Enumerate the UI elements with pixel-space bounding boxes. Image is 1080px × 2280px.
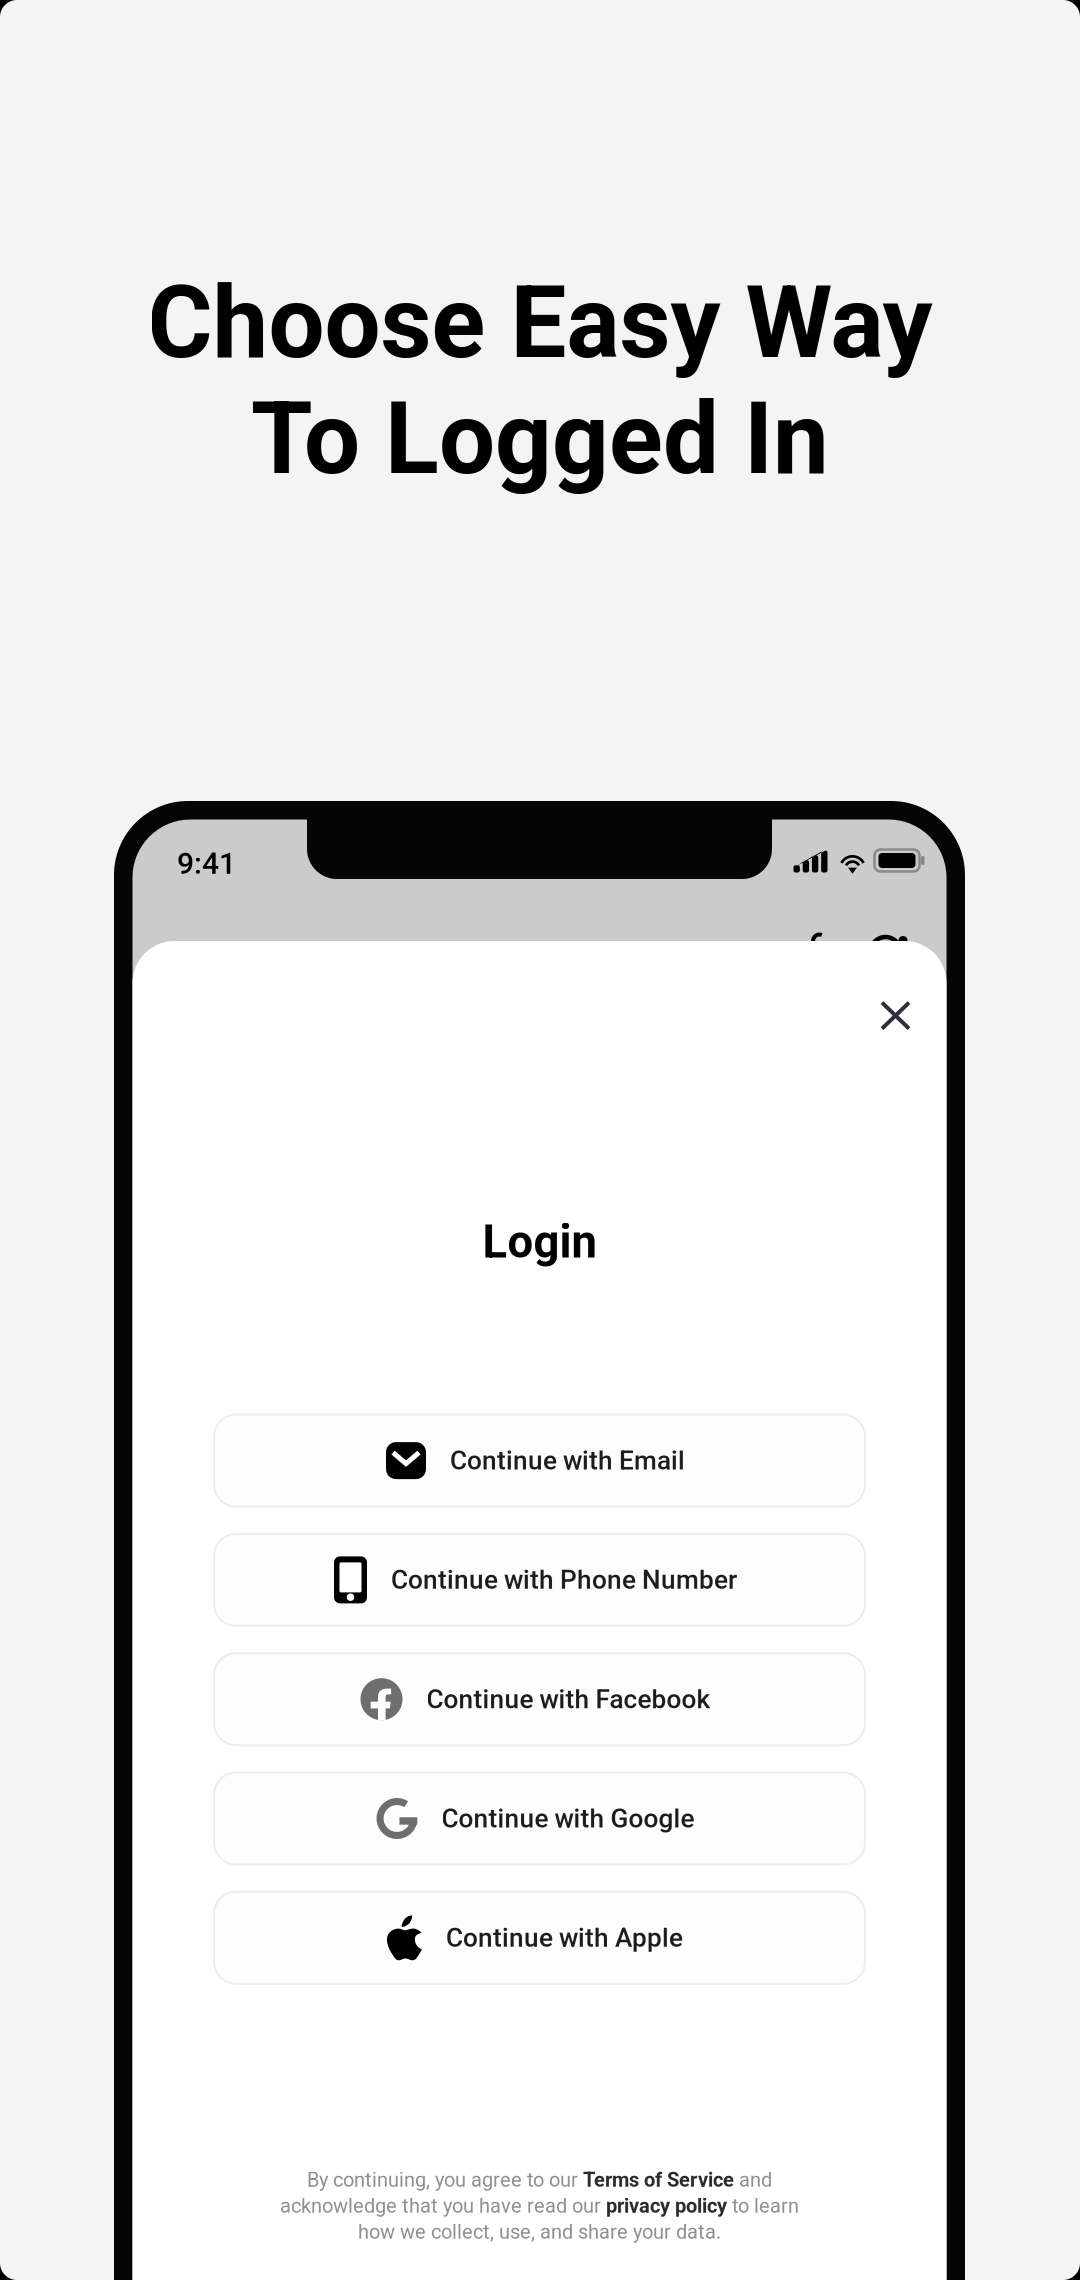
button[interactable]: Continue with Phone Number [214, 1534, 865, 1626]
staticText: to learn [727, 2194, 799, 2218]
staticText: acknowledge that you have read our [280, 2194, 606, 2218]
button[interactable]: Continue with Facebook [214, 1653, 865, 1745]
button[interactable]: Continue with Apple [214, 1892, 865, 1984]
staticText: Continue with Facebook [426, 1684, 710, 1714]
button[interactable]: Continue with Email [214, 1415, 865, 1507]
staticText: By continuing, you agree to our [307, 2168, 583, 2192]
staticText: 9:41 [177, 846, 236, 881]
staticText: Continue with Email [450, 1445, 685, 1476]
staticText: privacy policy [606, 2194, 727, 2218]
staticText: Choose Easy Way [147, 265, 932, 381]
staticText: Login [482, 1215, 596, 1268]
staticText: To Logged In [251, 381, 829, 497]
button[interactable]: Continue with Google [214, 1772, 865, 1864]
staticText: Continue with Phone Number [391, 1565, 737, 1595]
staticText: Continue with Apple [446, 1922, 683, 1953]
button[interactable]: Close [855, 976, 935, 1056]
staticText: Continue with Google [441, 1803, 694, 1834]
staticText: Terms of Service [583, 2168, 734, 2192]
staticText: how we collect, use, and share your data… [358, 2220, 721, 2244]
staticText: and [734, 2168, 772, 2192]
